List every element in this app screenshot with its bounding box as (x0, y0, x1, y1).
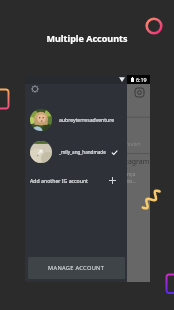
staticText: stagram (122, 157, 150, 167)
staticText: _mily_ang_handmade (59, 149, 106, 155)
button[interactable]: MANAGE ACCOUNT (28, 257, 125, 279)
staticText: onça rais... (124, 171, 137, 185)
staticText: Add another IG account (30, 177, 88, 184)
staticText: jysván (123, 140, 141, 148)
staticText: Multiple Accounts (0, 32, 174, 44)
staticText: aubreyterresadventure (59, 117, 115, 124)
button[interactable]: _mily_ang_handmade (25, 141, 127, 163)
button[interactable]: Instagram (135, 88, 144, 97)
button[interactable]: Add another IG account (25, 170, 127, 190)
staticText: MANAGE ACCOUNT (48, 264, 105, 272)
button[interactable]: aubreyterresadventure (25, 109, 127, 131)
staticText: 6:19 (136, 76, 147, 83)
button[interactable]: Settings (30, 84, 40, 94)
